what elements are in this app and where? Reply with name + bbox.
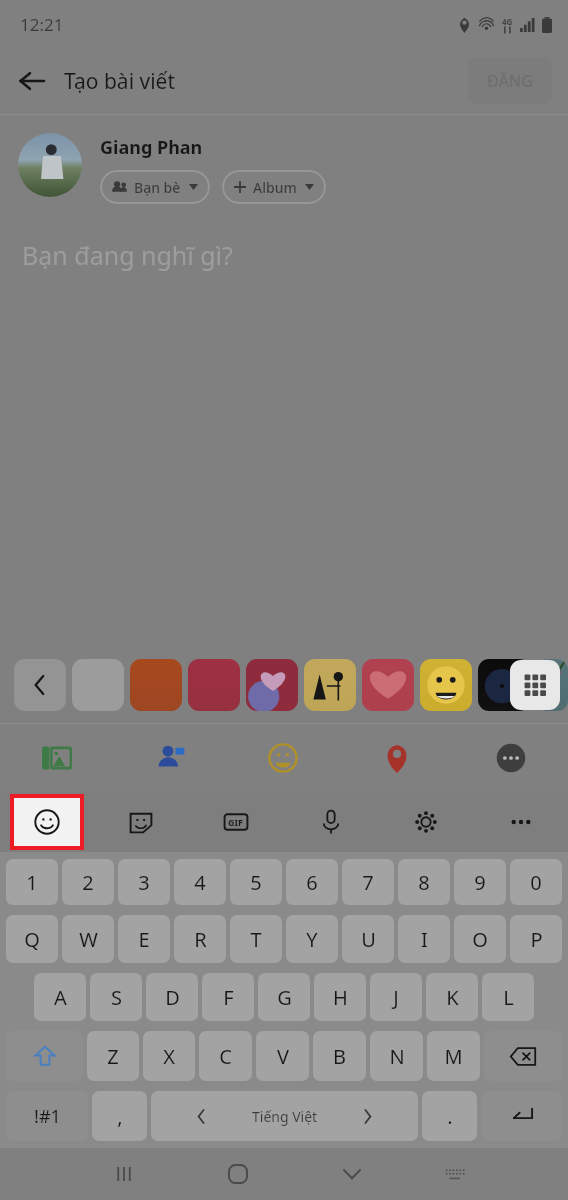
button[interactable]: Home xyxy=(181,1148,295,1200)
staticText: . xyxy=(447,1103,453,1130)
button[interactable]: All photos xyxy=(510,660,560,710)
staticText: P xyxy=(530,926,543,953)
button[interactable]: Back xyxy=(8,57,56,105)
staticText: Y xyxy=(306,926,318,953)
button[interactable]: Recents xyxy=(67,1148,181,1200)
button[interactable]: Sticker xyxy=(94,792,188,852)
button[interactable] xyxy=(536,659,568,711)
button[interactable]: S xyxy=(90,973,142,1021)
button[interactable]: Enter xyxy=(481,1091,562,1141)
button[interactable] xyxy=(304,659,356,711)
button[interactable]: 6 xyxy=(286,859,338,905)
button[interactable]: Shift xyxy=(6,1031,83,1081)
button[interactable]: V xyxy=(256,1031,309,1081)
staticText: A xyxy=(54,984,67,1011)
staticText: 3 xyxy=(138,869,150,896)
button[interactable]: K xyxy=(426,973,478,1021)
button[interactable]: C xyxy=(199,1031,252,1081)
button[interactable]: Voice input xyxy=(283,792,378,852)
button[interactable]: Tag people xyxy=(113,724,226,792)
staticText: Tiếng Việt xyxy=(252,1107,318,1126)
button[interactable]: Tiếng Việt xyxy=(151,1091,418,1141)
button[interactable]: Keyboard layout xyxy=(409,1148,500,1200)
staticText: 9 xyxy=(474,869,486,896)
button[interactable]: Y xyxy=(286,915,338,963)
button[interactable]: R xyxy=(174,915,226,963)
button[interactable]: P xyxy=(510,915,562,963)
button[interactable]: A xyxy=(34,973,86,1021)
button[interactable]: M xyxy=(427,1031,480,1081)
button[interactable]: 8 xyxy=(398,859,450,905)
button[interactable]: 1 xyxy=(6,859,58,905)
button[interactable]: Settings xyxy=(378,792,473,852)
staticText: 7 xyxy=(362,869,374,896)
button[interactable] xyxy=(362,659,414,711)
button[interactable]: E xyxy=(118,915,170,963)
staticText: G xyxy=(277,984,292,1011)
button[interactable]: D xyxy=(146,973,198,1021)
button[interactable]: Album xyxy=(222,170,326,204)
staticText: 1 xyxy=(26,869,38,896)
button[interactable] xyxy=(478,659,530,711)
button[interactable]: 3 xyxy=(118,859,170,905)
button[interactable]: More options xyxy=(473,792,568,852)
button[interactable]: F xyxy=(202,973,254,1021)
button[interactable]: Hide keyboard xyxy=(295,1148,409,1200)
button[interactable]: U xyxy=(342,915,394,963)
staticText: Bạn đang nghĩ gì? xyxy=(22,238,233,272)
staticText: K xyxy=(446,984,459,1011)
button[interactable]: X xyxy=(143,1031,195,1081)
button[interactable] xyxy=(246,659,298,711)
staticText: I xyxy=(421,926,428,953)
button[interactable]: , xyxy=(92,1091,147,1141)
button[interactable]: 9 xyxy=(454,859,506,905)
staticText: Z xyxy=(107,1043,119,1070)
button[interactable]: L xyxy=(482,973,534,1021)
button[interactable]: More xyxy=(454,724,568,792)
staticText: Q xyxy=(24,926,40,953)
button[interactable] xyxy=(188,659,240,711)
button[interactable]: J xyxy=(370,973,422,1021)
button[interactable]: 5 xyxy=(230,859,282,905)
button[interactable]: Feeling xyxy=(226,724,340,792)
staticText: 4G xyxy=(502,16,513,27)
staticText: !#1 xyxy=(34,1104,61,1129)
button[interactable]: Photos xyxy=(0,724,113,792)
staticText: GIF xyxy=(228,816,243,828)
button[interactable]: Q xyxy=(6,915,58,963)
button[interactable] xyxy=(420,659,472,711)
button[interactable]: W xyxy=(62,915,114,963)
staticText: Tạo bài viết xyxy=(64,67,176,96)
staticText: V xyxy=(277,1043,289,1070)
button[interactable]: Backspace xyxy=(484,1031,562,1081)
button[interactable]: 0 xyxy=(510,859,562,905)
button[interactable]: Collapse xyxy=(14,659,66,711)
staticText: 8 xyxy=(418,869,430,896)
button[interactable]: T xyxy=(230,915,282,963)
button[interactable]: Check in xyxy=(340,724,454,792)
button[interactable]: N xyxy=(370,1031,423,1081)
button[interactable]: Bạn bè xyxy=(100,170,210,204)
button[interactable]: ĐĂNG xyxy=(468,58,552,104)
button[interactable]: H xyxy=(314,973,366,1021)
button[interactable]: G xyxy=(258,973,310,1021)
staticText: ĐĂNG xyxy=(487,70,533,92)
button[interactable]: Emoji xyxy=(14,798,80,846)
button[interactable]: 2 xyxy=(62,859,114,905)
button[interactable]: 4 xyxy=(174,859,226,905)
staticText: W xyxy=(79,926,98,953)
button[interactable]: 7 xyxy=(342,859,394,905)
button[interactable] xyxy=(130,659,182,711)
button[interactable]: !#1 xyxy=(6,1091,88,1141)
button[interactable]: B xyxy=(313,1031,366,1081)
staticText: Giang Phan xyxy=(100,135,203,160)
button[interactable]: O xyxy=(454,915,506,963)
staticText: H xyxy=(333,984,348,1011)
button[interactable] xyxy=(18,133,82,197)
button[interactable]: Z xyxy=(87,1031,139,1081)
button[interactable]: I xyxy=(398,915,450,963)
button[interactable] xyxy=(72,659,124,711)
button[interactable]: . xyxy=(422,1091,477,1141)
button[interactable]: GIF xyxy=(188,792,283,852)
staticText: , xyxy=(117,1103,123,1130)
